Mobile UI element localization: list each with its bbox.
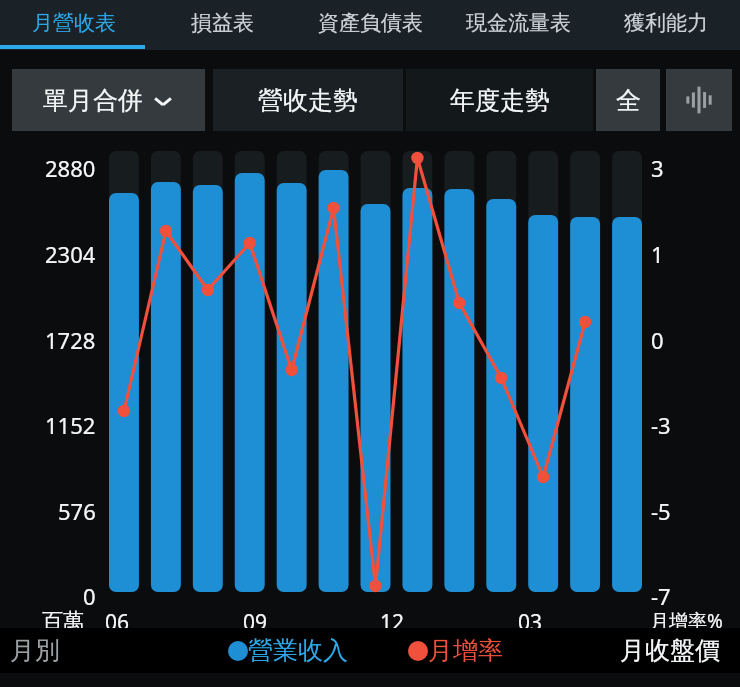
staticText: 06 <box>105 608 130 637</box>
staticText: 09 <box>243 608 268 637</box>
staticText: 2304 <box>45 239 96 269</box>
staticText: -3 <box>651 410 671 440</box>
staticText: 現金流量表 <box>466 10 571 36</box>
button[interactable]: 現金流量表 <box>444 0 592 46</box>
staticText: 576 <box>58 496 96 526</box>
button[interactable]: 單月合併 <box>12 69 205 131</box>
staticText: 1728 <box>45 325 96 355</box>
staticText: 1152 <box>45 410 96 440</box>
staticText: 月增率 <box>428 635 503 666</box>
staticText: 03 <box>518 608 543 637</box>
staticText: 全 <box>616 85 641 116</box>
button[interactable]: 資產負債表 <box>296 0 444 46</box>
staticText: 營收走勢 <box>258 85 358 116</box>
staticText: 獲利能力 <box>624 10 708 36</box>
staticText: 月收盤價 <box>620 635 720 666</box>
staticText: 損益表 <box>191 10 254 36</box>
staticText: -7 <box>651 581 671 611</box>
button[interactable]: 營收走勢 <box>213 69 403 131</box>
button[interactable]: 月營收表 <box>0 0 148 46</box>
staticText: 資產負債表 <box>318 10 423 36</box>
staticText: 12 <box>380 608 405 637</box>
staticText: -5 <box>651 496 671 526</box>
button[interactable]: 獲利能力 <box>592 0 740 46</box>
staticText: 1 <box>651 239 664 269</box>
staticText: 年度走勢 <box>450 85 550 116</box>
staticText: 單月合併 <box>43 85 143 116</box>
staticText: 月營收表 <box>32 10 116 36</box>
staticText: 3 <box>651 153 664 183</box>
button[interactable]: 年度走勢 <box>406 69 593 131</box>
button[interactable]: 損益表 <box>148 0 296 46</box>
staticText: 2880 <box>45 153 96 183</box>
button[interactable]: 全 <box>596 69 660 131</box>
button[interactable]: Chart style <box>666 69 732 131</box>
staticText: 0 <box>651 325 664 355</box>
staticText: 月增率% <box>650 608 723 634</box>
staticText: 月別 <box>10 635 60 666</box>
staticText: 營業收入 <box>248 635 348 666</box>
staticText: 0 <box>83 581 96 611</box>
staticText: 百萬 <box>42 608 84 634</box>
